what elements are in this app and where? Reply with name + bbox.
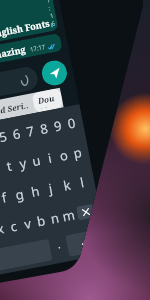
staticText: 9 xyxy=(52,116,64,135)
staticText: Double .. xyxy=(37,92,58,109)
button[interactable]: Double .. xyxy=(31,88,64,113)
button[interactable]: Enter xyxy=(65,229,104,257)
button[interactable]: c xyxy=(4,210,23,242)
staticText: o xyxy=(58,146,69,165)
button[interactable]: Space xyxy=(0,239,53,274)
button[interactable]: 7 xyxy=(21,115,40,147)
button[interactable]: n xyxy=(45,202,64,234)
button[interactable]: k xyxy=(56,169,77,201)
staticText: 6 xyxy=(11,124,22,143)
staticText: j xyxy=(47,179,55,197)
button[interactable]: 5 xyxy=(0,120,13,152)
button[interactable]: u xyxy=(27,144,46,177)
button[interactable]: is amazing xyxy=(0,33,63,68)
button[interactable]: 8 xyxy=(35,112,54,144)
staticText: n xyxy=(49,208,61,228)
button[interactable]: 6 xyxy=(7,118,27,150)
button[interactable]: m xyxy=(59,199,78,231)
staticText: Bold and old English Fonts xyxy=(0,16,51,51)
staticText: k xyxy=(62,176,72,195)
staticText: f xyxy=(0,188,8,207)
other: Attach xyxy=(18,73,31,86)
staticText: 17:17 xyxy=(29,43,46,54)
staticText: m xyxy=(61,205,77,225)
button[interactable]: Backspace xyxy=(72,195,99,229)
button[interactable]: f xyxy=(0,181,14,214)
button[interactable]: p xyxy=(68,136,87,169)
staticText: x xyxy=(0,219,5,238)
staticText: l xyxy=(79,173,86,191)
button[interactable]: l xyxy=(72,166,93,198)
button[interactable]: Bold Seri.. xyxy=(0,95,35,122)
button[interactable]: x xyxy=(0,213,9,245)
button[interactable]: h xyxy=(24,175,46,208)
staticText: 7 xyxy=(25,121,36,141)
staticText: u xyxy=(31,151,43,170)
staticText: t xyxy=(5,156,13,175)
button[interactable]: o xyxy=(54,139,74,171)
staticText: y xyxy=(18,154,28,173)
staticText: Bold Seri.. xyxy=(0,99,29,118)
staticText: 0 xyxy=(66,113,77,133)
staticText: b xyxy=(35,211,46,230)
button[interactable]: Send xyxy=(40,58,69,88)
button[interactable]: b xyxy=(31,205,51,237)
button[interactable]: Bold and old English Fonts xyxy=(0,0,59,55)
button[interactable]: j xyxy=(40,172,62,205)
staticText: p xyxy=(72,143,83,162)
button[interactable]: v xyxy=(17,207,37,239)
staticText: is amazing xyxy=(0,43,27,64)
staticText: i xyxy=(46,149,54,167)
staticText: 8 xyxy=(39,119,50,138)
button[interactable]: y xyxy=(13,147,32,179)
button[interactable]: 0 xyxy=(62,107,82,139)
staticText: 5 xyxy=(0,127,9,146)
button[interactable]: i xyxy=(40,142,60,174)
button[interactable]: Attach xyxy=(0,65,40,108)
staticText: v xyxy=(22,214,33,233)
button[interactable]: Period xyxy=(48,235,69,260)
staticText: c xyxy=(9,217,19,236)
button[interactable]: t xyxy=(0,150,19,182)
staticText: h xyxy=(29,182,42,201)
button[interactable]: 9 xyxy=(48,110,68,142)
staticText: g xyxy=(14,185,25,204)
button[interactable]: How are you xyxy=(0,0,49,1)
button[interactable]: g xyxy=(9,178,30,211)
